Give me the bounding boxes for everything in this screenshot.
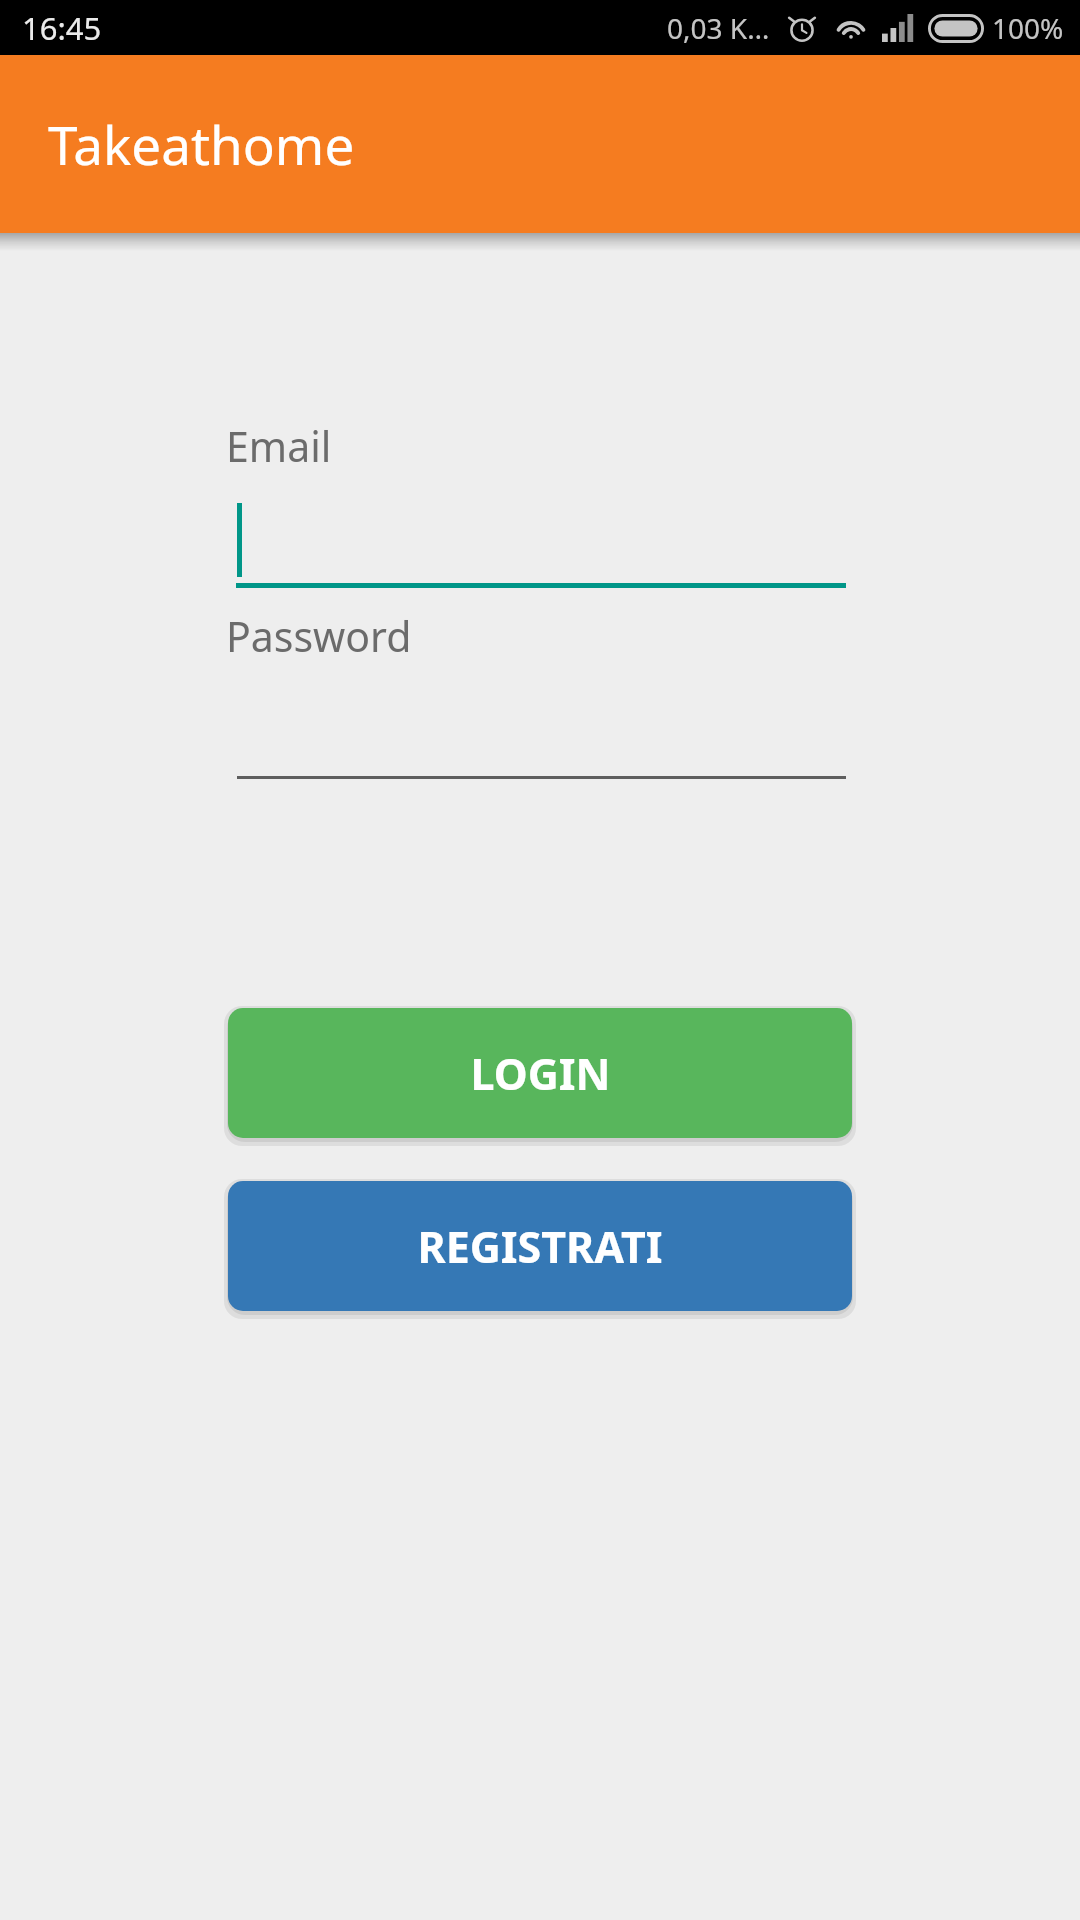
other: Mobile signal xyxy=(882,14,914,42)
other: Alarm set xyxy=(786,12,818,44)
other: Wi-Fi connected xyxy=(834,11,868,45)
staticText: Takeathome xyxy=(48,108,355,180)
staticText: LOGIN xyxy=(470,1044,611,1103)
staticText: 100% xyxy=(992,9,1064,47)
staticText: Email xyxy=(226,418,332,474)
button[interactable]: LOGIN xyxy=(228,1008,852,1138)
other: Battery full xyxy=(928,14,984,43)
staticText: REGISTRATI xyxy=(417,1217,663,1276)
button[interactable]: Password input field xyxy=(226,684,846,784)
staticText: 16:45 xyxy=(22,7,102,49)
staticText: Password xyxy=(226,608,412,664)
button[interactable]: Email input field xyxy=(226,492,846,592)
staticText: 0,03 K… xyxy=(667,9,770,47)
button[interactable]: REGISTRATI xyxy=(228,1181,852,1311)
